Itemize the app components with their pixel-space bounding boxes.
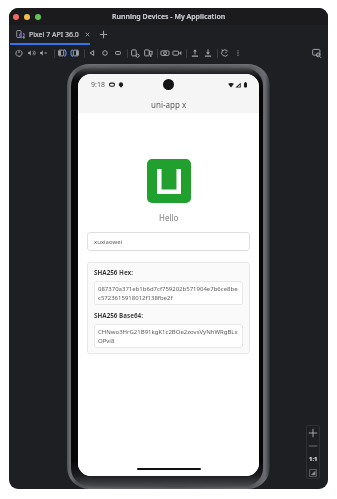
button[interactable]: Close tab — [84, 31, 91, 38]
button[interactable]: Upload file — [189, 47, 201, 59]
staticText: 1:1 — [309, 455, 318, 463]
button[interactable]: Overview — [112, 47, 124, 59]
button[interactable]: Power — [13, 47, 25, 59]
staticText: 9:18 — [91, 80, 105, 90]
button[interactable]: Pixel 7 API 36.0 — [12, 25, 95, 44]
staticText: xuxiaowei — [94, 238, 123, 246]
staticText: SHA256 Hex: — [94, 268, 133, 277]
button[interactable]: Home — [99, 47, 111, 59]
button[interactable]: Maximize window — [35, 14, 41, 20]
staticText: SHA256 Base64: — [94, 311, 143, 320]
button[interactable]: xuxiaowei — [87, 232, 250, 251]
button[interactable]: Zoom out — [306, 439, 320, 453]
button[interactable]: Actual size — [306, 452, 320, 466]
staticText: Hello — [159, 212, 179, 223]
button[interactable]: Back — [86, 47, 98, 59]
button[interactable]: Minimize window — [24, 14, 30, 20]
button[interactable]: Fold — [129, 47, 141, 59]
button[interactable]: More options — [233, 48, 243, 58]
button[interactable]: New tab — [98, 29, 109, 40]
button[interactable]: History — [219, 47, 231, 59]
button[interactable]: Screenshot — [159, 47, 171, 59]
staticText: CHNwo3HrG21B91kgK1c2BOe2zovsVyNhWRgBLxOP… — [98, 328, 239, 344]
button[interactable]: Volume down — [38, 47, 50, 59]
button[interactable]: Rotate left — [56, 47, 68, 59]
button[interactable]: Device settings — [142, 47, 154, 59]
button[interactable]: Close window — [13, 14, 19, 20]
staticText: 087370a371eb1b6d7cf759202b571904e7b6ce8b… — [98, 285, 239, 301]
button[interactable]: Download file — [202, 47, 214, 59]
staticText: Pixel 7 API 36.0 — [29, 30, 79, 40]
button[interactable]: Rotate right — [69, 47, 81, 59]
button[interactable]: Record screen — [171, 47, 183, 59]
button[interactable]: Volume up — [26, 47, 38, 59]
button[interactable]: Search — [311, 47, 323, 59]
staticText: uni-app x — [151, 99, 187, 110]
button[interactable]: Zoom to fit — [306, 466, 320, 480]
button[interactable]: Zoom in — [306, 426, 320, 440]
staticText: Running Devices - My Application — [112, 12, 226, 22]
